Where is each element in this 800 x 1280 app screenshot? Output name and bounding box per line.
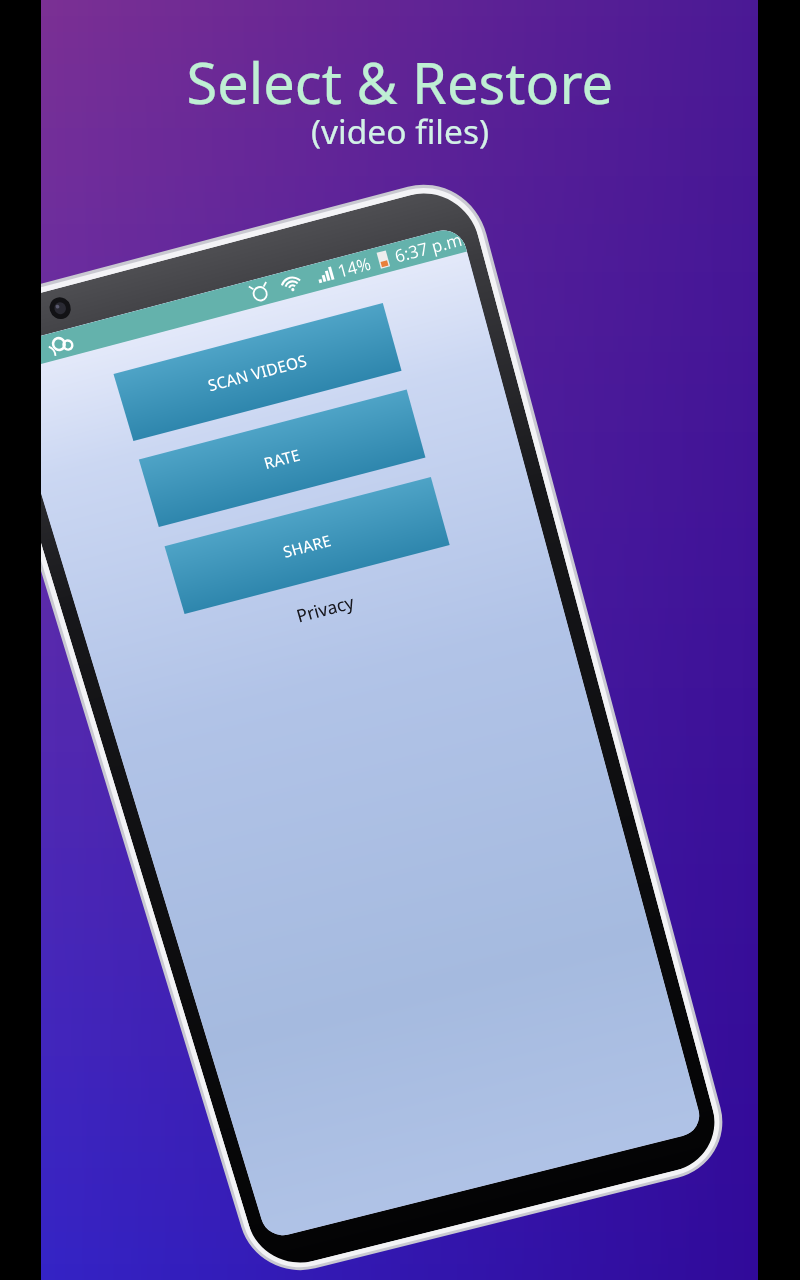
button[interactable]: Select & Restore video files promo: [0, 0, 800, 1280]
